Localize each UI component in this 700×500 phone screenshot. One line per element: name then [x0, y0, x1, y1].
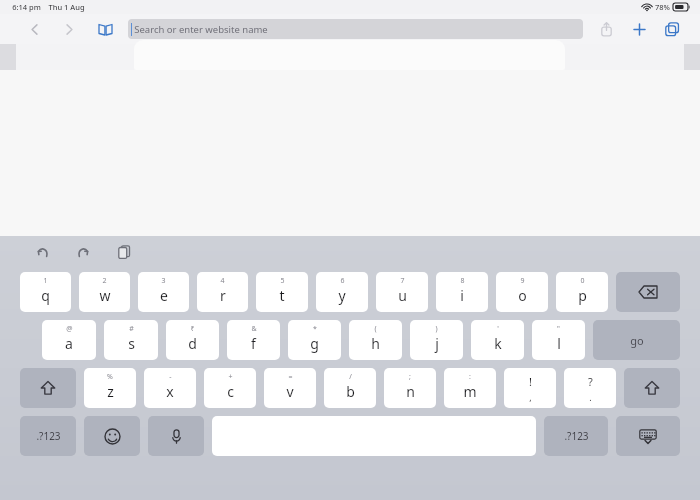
- staticText: u: [398, 286, 407, 305]
- button[interactable]: Back: [22, 17, 46, 41]
- button[interactable]: 1: [20, 272, 71, 312]
- button[interactable]: Search or enter website name: [128, 19, 583, 39]
- staticText: Search or enter website name: [134, 23, 268, 36]
- button[interactable]: Go: [593, 320, 680, 360]
- staticText: &: [251, 324, 257, 334]
- staticText: go: [630, 333, 644, 348]
- button[interactable]: ₹: [166, 320, 219, 360]
- staticText: n: [406, 382, 415, 401]
- staticText: d: [188, 334, 197, 353]
- staticText: =: [288, 372, 293, 382]
- button[interactable]: #: [104, 320, 158, 360]
- button[interactable]: 6: [316, 272, 368, 312]
- button[interactable]: :: [444, 368, 496, 408]
- button[interactable]: %: [84, 368, 136, 408]
- button[interactable]: (: [349, 320, 402, 360]
- button[interactable]: 8: [436, 272, 488, 312]
- button[interactable]: Backspace: [616, 272, 680, 312]
- staticText: 7: [400, 276, 405, 286]
- button[interactable]: 2: [79, 272, 130, 312]
- staticText: ": [557, 324, 560, 334]
- staticText: e: [160, 286, 168, 305]
- staticText: 78%: [655, 2, 670, 12]
- staticText: :: [469, 372, 471, 382]
- staticText: +: [228, 372, 233, 382]
- button[interactable]: 7: [376, 272, 428, 312]
- button[interactable]: -: [144, 368, 196, 408]
- button[interactable]: ;: [384, 368, 436, 408]
- staticText: 8: [460, 276, 465, 286]
- staticText: .: [589, 391, 592, 403]
- staticText: c: [227, 382, 234, 401]
- button[interactable]: 5: [256, 272, 308, 312]
- staticText: ,: [529, 391, 532, 403]
- staticText: l: [557, 334, 561, 353]
- staticText: 1: [43, 276, 48, 286]
- staticText: a: [65, 334, 73, 353]
- button[interactable]: ": [532, 320, 585, 360]
- staticText: 3: [161, 276, 166, 286]
- button[interactable]: /: [324, 368, 376, 408]
- staticText: b: [346, 382, 355, 401]
- button[interactable]: Gmail: [16, 44, 296, 70]
- staticText: 6:14 pm: [12, 2, 41, 12]
- button[interactable]: Paste: [112, 240, 136, 264]
- staticText: (: [374, 324, 377, 334]
- staticText: .?123: [36, 429, 61, 443]
- button[interactable]: Undo: [30, 240, 54, 264]
- button[interactable]: Bookmarks: [92, 16, 118, 42]
- button[interactable]: 4: [197, 272, 248, 312]
- staticText: 0: [580, 276, 585, 286]
- staticText: #: [129, 324, 134, 334]
- staticText: y: [338, 286, 346, 305]
- button[interactable]: Emoji: [84, 416, 140, 456]
- button[interactable]: Redo: [71, 240, 95, 264]
- staticText: v: [286, 382, 294, 401]
- staticText: s: [128, 334, 135, 353]
- staticText: 4: [220, 276, 225, 286]
- button[interactable]: Shift: [624, 368, 680, 408]
- button[interactable]: 0: [556, 272, 608, 312]
- button[interactable]: Forward: [57, 17, 81, 41]
- button[interactable]: Show tabs: [660, 17, 684, 41]
- button[interactable]: ': [471, 320, 524, 360]
- button[interactable]: Untitled: [297, 44, 684, 70]
- button[interactable]: Shift: [20, 368, 76, 408]
- staticText: p: [578, 286, 587, 305]
- button[interactable]: +: [204, 368, 256, 408]
- button[interactable]: &: [227, 320, 280, 360]
- button[interactable]: Dictate: [148, 416, 204, 456]
- staticText: f: [251, 334, 256, 353]
- staticText: Thu 1 Aug: [48, 2, 85, 12]
- staticText: ?: [588, 374, 593, 389]
- staticText: !: [529, 374, 532, 389]
- staticText: 5: [280, 276, 285, 286]
- button[interactable]: *: [288, 320, 341, 360]
- button[interactable]: ?: [564, 368, 616, 408]
- staticText: *: [313, 324, 317, 334]
- staticText: /: [349, 372, 352, 382]
- button[interactable]: =: [264, 368, 316, 408]
- staticText: g: [310, 334, 319, 353]
- button[interactable]: New tab: [627, 17, 651, 41]
- button[interactable]: 3: [138, 272, 189, 312]
- staticText: ;: [409, 372, 411, 382]
- button[interactable]: Numbers: [544, 416, 608, 456]
- button[interactable]: @: [42, 320, 96, 360]
- staticText: ₹: [190, 324, 195, 334]
- button[interactable]: 9: [496, 272, 548, 312]
- button[interactable]: Share: [594, 17, 618, 41]
- staticText: w: [99, 286, 111, 305]
- button[interactable]: Numbers: [20, 416, 76, 456]
- staticText: %: [107, 372, 113, 382]
- staticText: 2: [102, 276, 107, 286]
- button[interactable]: ): [410, 320, 463, 360]
- staticText: @: [66, 324, 73, 334]
- button[interactable]: Hide keyboard: [616, 416, 680, 456]
- staticText: ': [497, 324, 499, 334]
- button[interactable]: !: [504, 368, 556, 408]
- staticText: r: [220, 286, 226, 305]
